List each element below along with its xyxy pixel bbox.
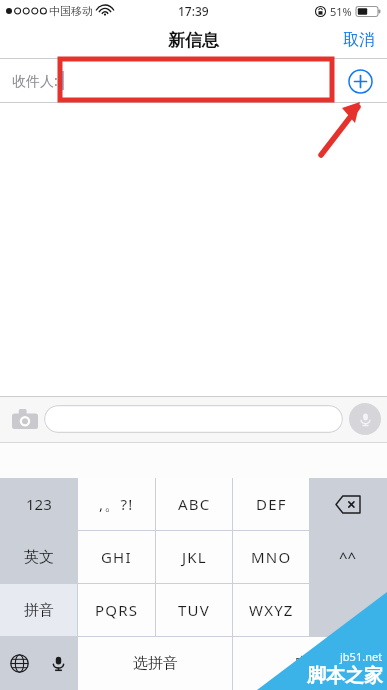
button[interactable]: Voice message	[349, 403, 381, 435]
staticText: PQRS	[95, 600, 139, 620]
staticText: 17:39	[178, 3, 209, 19]
staticText: GHI	[101, 547, 132, 567]
button[interactable]: Dictation	[39, 637, 77, 690]
button[interactable]: 123	[0, 478, 77, 530]
button[interactable]	[310, 478, 386, 530]
staticText: 脚本之家	[307, 664, 383, 688]
button[interactable]: 拼音	[0, 584, 77, 636]
staticText: 收件人:	[12, 71, 58, 90]
button[interactable]: DEF	[233, 478, 309, 530]
button[interactable]: ABC	[156, 478, 232, 530]
button[interactable]: GHI	[78, 531, 155, 583]
button[interactable]: 取消	[331, 24, 387, 56]
staticText: 新信息	[168, 30, 219, 51]
staticText: 拼音	[24, 601, 54, 620]
staticText: 51%	[330, 4, 352, 19]
button[interactable]: 英文	[0, 531, 77, 583]
staticText: WXYZ	[249, 600, 294, 620]
button[interactable]: Add contact	[343, 64, 377, 98]
staticText: MNO	[251, 547, 292, 567]
staticText: DEF	[256, 494, 287, 514]
staticText: ABC	[178, 494, 211, 514]
staticText: 选拼音	[133, 654, 178, 673]
button[interactable]	[310, 584, 386, 636]
button[interactable]: PQRS	[78, 584, 155, 636]
button[interactable]: MNO	[233, 531, 309, 583]
button[interactable]	[44, 405, 343, 433]
button[interactable]: 空格	[233, 637, 387, 690]
staticText: jb51.net	[340, 649, 383, 664]
staticText: 中国移动	[49, 4, 93, 18]
button[interactable]: WXYZ	[233, 584, 309, 636]
button[interactable]: ^^	[310, 531, 386, 583]
staticText: JKL	[182, 547, 207, 567]
staticText: 英文	[24, 548, 54, 567]
button[interactable]: ,。?!	[78, 478, 155, 530]
button[interactable]: Switch keyboard	[0, 637, 38, 690]
staticText: 空格	[295, 654, 325, 673]
staticText: ^^	[339, 547, 357, 567]
button[interactable]: JKL	[156, 531, 232, 583]
button[interactable]: TUV	[156, 584, 232, 636]
staticText: TUV	[178, 600, 210, 620]
staticText: 取消	[343, 30, 375, 50]
staticText: ,。?!	[99, 494, 134, 514]
staticText: 123	[26, 494, 52, 514]
button[interactable]: Camera	[6, 400, 44, 438]
button[interactable]: 选拼音	[78, 637, 232, 690]
button[interactable]: 收件人:	[0, 58, 387, 103]
